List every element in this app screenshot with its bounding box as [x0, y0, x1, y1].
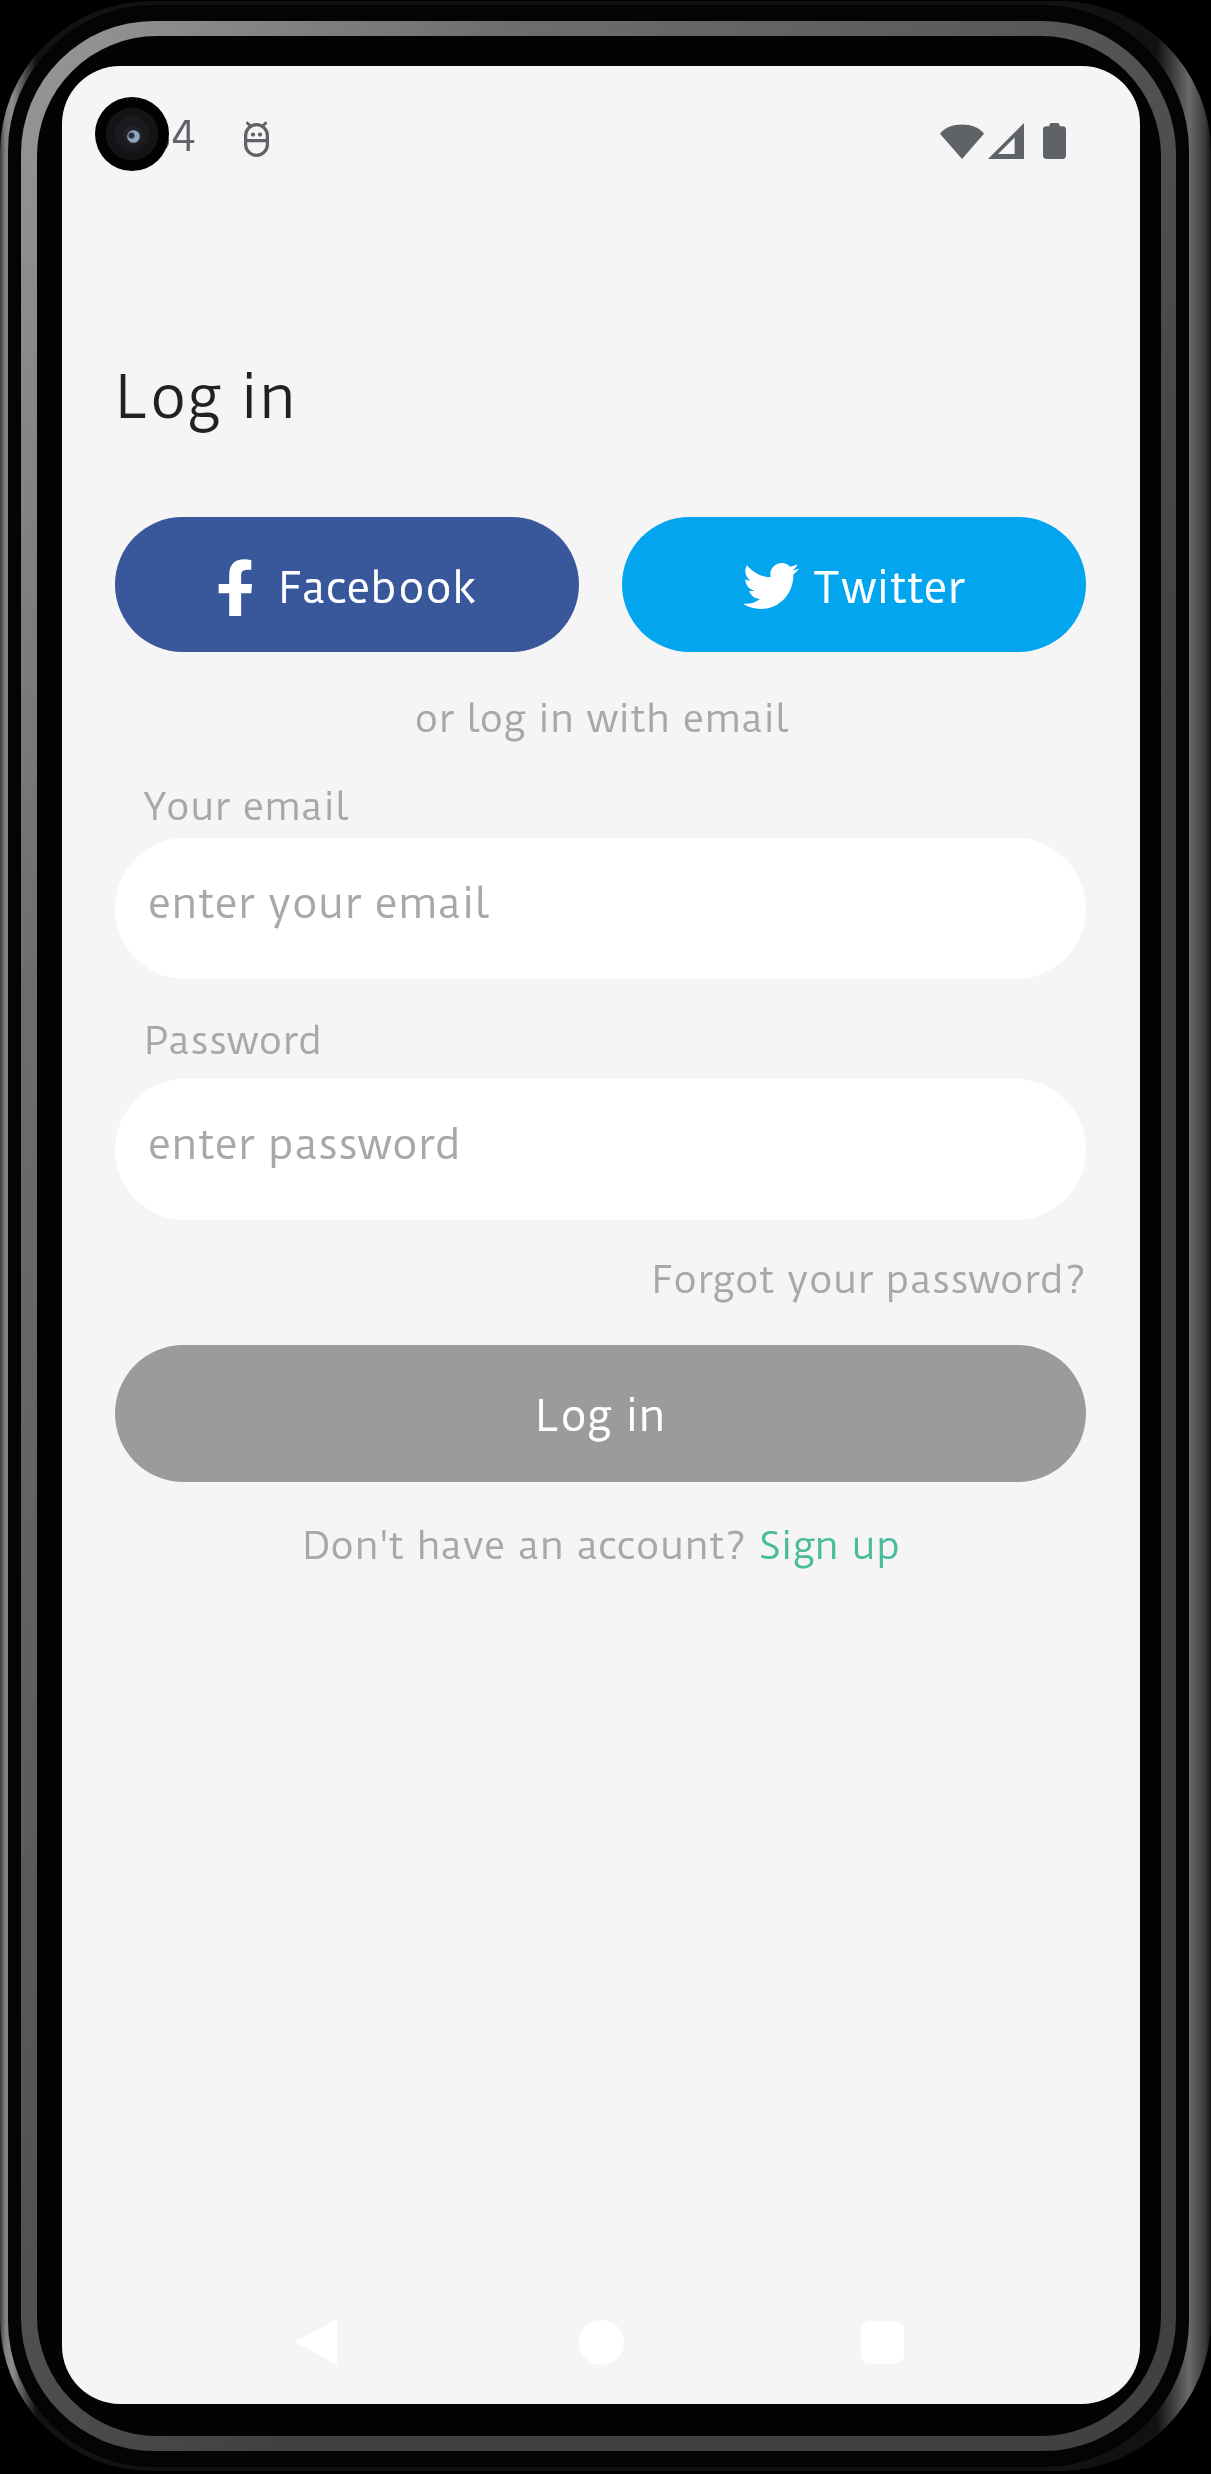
button[interactable]: Twitter: [622, 517, 1086, 652]
staticText: Forgot your password?: [640, 1257, 1086, 1303]
staticText: Facebook: [278, 563, 477, 614]
staticText: enter your email: [148, 879, 489, 929]
button[interactable]: Back: [271, 2296, 361, 2388]
button[interactable]: Facebook: [115, 517, 579, 652]
staticText: Your email: [144, 784, 348, 830]
staticText: Password: [144, 1018, 323, 1064]
staticText: Sign up: [759, 1523, 901, 1569]
button[interactable]: Sign up: [759, 1523, 901, 1569]
button[interactable]: Home: [555, 2296, 647, 2388]
staticText: enter password: [148, 1120, 462, 1170]
button[interactable]: enter your email: [115, 838, 1086, 979]
staticText: or log in with email: [62, 696, 1140, 742]
button[interactable]: Log in: [115, 1345, 1086, 1482]
staticText: Log in: [116, 362, 297, 433]
staticText: Twitter: [811, 563, 965, 614]
button[interactable]: enter password: [115, 1079, 1086, 1220]
button[interactable]: Forgot your password?: [640, 1257, 1086, 1307]
button[interactable]: Recents: [836, 2296, 928, 2388]
staticText: Log in: [536, 1391, 666, 1442]
staticText: 9:34: [112, 112, 196, 162]
staticText: Don't have an account?: [302, 1523, 759, 1569]
